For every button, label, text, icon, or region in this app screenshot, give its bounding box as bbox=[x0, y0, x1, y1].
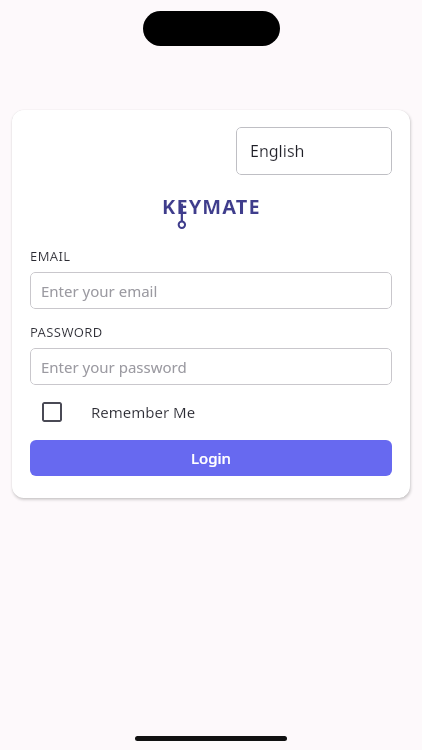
staticText: Enter your email bbox=[41, 281, 158, 301]
staticText: Enter your password bbox=[41, 357, 187, 377]
staticText: EMAIL bbox=[30, 247, 71, 265]
button[interactable]: Enter your email bbox=[30, 272, 392, 309]
button[interactable]: Remember Me bbox=[30, 399, 196, 425]
button[interactable]: Enter your password bbox=[30, 348, 392, 385]
button[interactable]: Login bbox=[30, 440, 392, 476]
button[interactable]: English bbox=[236, 127, 392, 175]
staticText: Remember Me bbox=[91, 402, 196, 422]
staticText: English bbox=[250, 140, 305, 162]
staticText: PASSWORD bbox=[30, 323, 103, 341]
staticText: KEYMATE bbox=[162, 193, 261, 220]
staticText: Login bbox=[191, 448, 231, 468]
